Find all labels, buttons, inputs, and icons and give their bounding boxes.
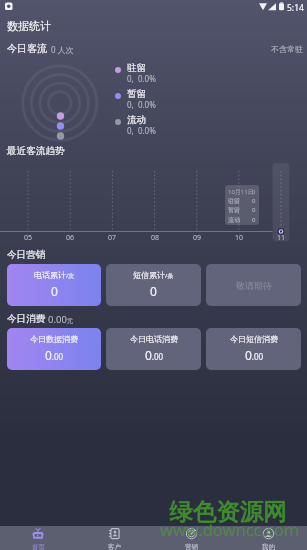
button[interactable]: 首页 <box>0 526 76 550</box>
staticText: 今日短信消费 <box>230 334 278 344</box>
staticText: 0.00 <box>145 347 164 363</box>
staticText: 今日消费 <box>7 313 46 325</box>
staticText: 0 <box>252 197 256 205</box>
staticText: 我的 <box>262 543 275 550</box>
staticText: 11 <box>277 233 286 243</box>
staticText: 0, 0.0% <box>127 99 156 110</box>
staticText: 今日客流 <box>7 42 47 55</box>
staticText: 08 <box>151 233 160 243</box>
staticText: 短信累计/条 <box>133 270 174 280</box>
button[interactable]: 我的 <box>230 526 307 550</box>
button[interactable]: 客户 <box>76 526 153 550</box>
staticText: 09 <box>193 233 202 243</box>
button[interactable]: 今日电话消费 <box>106 328 201 370</box>
button[interactable]: 今日数据消费 <box>7 328 101 370</box>
staticText: 07 <box>108 233 117 243</box>
staticText: 0.00 <box>45 347 64 363</box>
staticText: 暂留 <box>127 88 146 100</box>
staticText: 最近客流趋势 <box>7 145 65 157</box>
staticText: 06 <box>66 233 75 243</box>
button[interactable]: 敬请期待 <box>206 264 301 306</box>
staticText: 流动 <box>228 216 240 224</box>
staticText: 敬请期待 <box>236 280 272 291</box>
staticText: 05 <box>24 233 33 243</box>
staticText: 营销 <box>185 543 198 550</box>
staticText: 0 <box>252 206 256 214</box>
staticText: www.downcc.com <box>160 518 300 540</box>
staticText: 首页 <box>32 543 45 550</box>
staticText: 0 <box>150 283 157 299</box>
button[interactable]: 营销 <box>153 526 230 550</box>
button[interactable]: 今日短信消费 <box>206 328 301 370</box>
staticText: 驻留 <box>228 197 240 205</box>
staticText: 数据统计 <box>7 19 51 33</box>
button[interactable]: 电话累计/次 <box>7 264 101 306</box>
staticText: 0 <box>252 216 256 224</box>
staticText: 0 <box>252 188 256 196</box>
staticText: 0, 0.0% <box>127 73 156 84</box>
staticText: 不含常驻 <box>271 44 303 54</box>
staticText: 0, 0.0% <box>127 125 156 136</box>
staticText: 0 <box>51 283 58 299</box>
staticText: 10 <box>235 233 244 243</box>
staticText: 今日电话消费 <box>130 334 178 344</box>
staticText: 暂留 <box>228 206 240 214</box>
staticText: 流动 <box>127 114 146 126</box>
staticText: 今日营销 <box>7 249 46 261</box>
staticText: 今日数据消费 <box>30 334 78 344</box>
staticText: 10月11日 <box>228 188 254 196</box>
staticText: 0 人次 <box>51 44 74 55</box>
staticText: 客户 <box>108 543 121 550</box>
staticText: 驻留 <box>127 62 146 74</box>
button[interactable]: 短信累计/条 <box>106 264 201 306</box>
staticText: 绿色资源网 <box>169 497 287 527</box>
staticText: 0.00元 <box>48 313 74 326</box>
staticText: 0.00 <box>245 347 264 363</box>
staticText: 5:14 <box>287 2 304 14</box>
staticText: 电话累计/次 <box>34 270 75 280</box>
